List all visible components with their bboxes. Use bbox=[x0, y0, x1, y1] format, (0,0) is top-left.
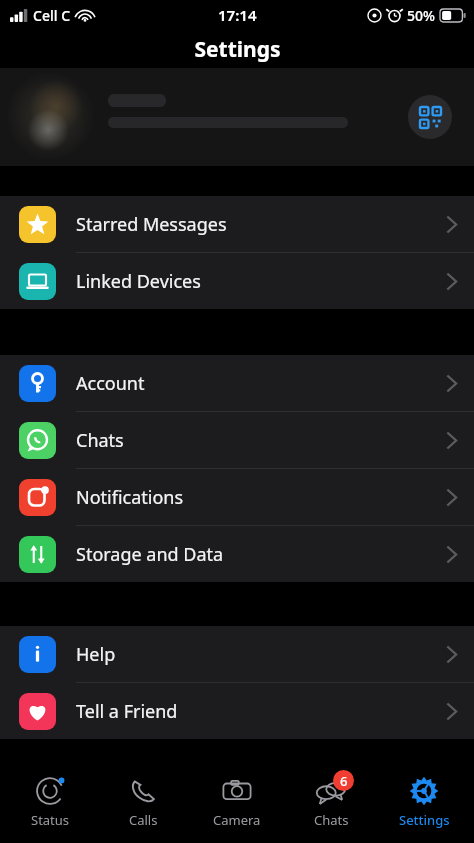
button[interactable]: Chats bbox=[0, 412, 474, 468]
button[interactable]: QR code bbox=[0, 68, 474, 166]
button[interactable]: QR code bbox=[408, 95, 452, 139]
button[interactable]: Storage and Data bbox=[0, 526, 474, 582]
button[interactable]: Account bbox=[0, 355, 474, 411]
staticText: Cell C bbox=[33, 6, 71, 25]
staticText: Calls bbox=[129, 811, 158, 829]
button[interactable]: Notifications bbox=[0, 469, 474, 525]
staticText: Status bbox=[31, 811, 70, 829]
staticText: Linked Devices bbox=[76, 269, 201, 294]
staticText: Chats bbox=[76, 428, 124, 453]
staticText: Settings bbox=[194, 35, 281, 64]
button[interactable]: Help bbox=[0, 626, 474, 682]
staticText: Camera bbox=[213, 811, 261, 829]
staticText: Tell a Friend bbox=[76, 699, 178, 724]
button[interactable]: Tell a Friend bbox=[0, 683, 474, 739]
button[interactable]: Starred Messages bbox=[0, 196, 474, 252]
button[interactable]: Settings bbox=[380, 766, 468, 829]
button[interactable]: 6 bbox=[287, 766, 375, 829]
staticText: Starred Messages bbox=[76, 212, 227, 237]
staticText: Storage and Data bbox=[76, 542, 224, 567]
staticText: Account bbox=[76, 371, 145, 396]
button[interactable]: Linked Devices bbox=[0, 253, 474, 309]
staticText: 17:14 bbox=[218, 5, 257, 25]
button[interactable]: Status bbox=[6, 766, 94, 829]
staticText: 6 bbox=[340, 772, 348, 790]
button[interactable]: Calls bbox=[99, 766, 187, 829]
staticText: Help bbox=[76, 642, 116, 667]
staticText: Notifications bbox=[76, 485, 184, 510]
staticText: Chats bbox=[314, 811, 349, 829]
staticText: 50% bbox=[407, 6, 435, 25]
button[interactable]: Camera bbox=[193, 766, 281, 829]
staticText: Settings bbox=[399, 811, 450, 829]
